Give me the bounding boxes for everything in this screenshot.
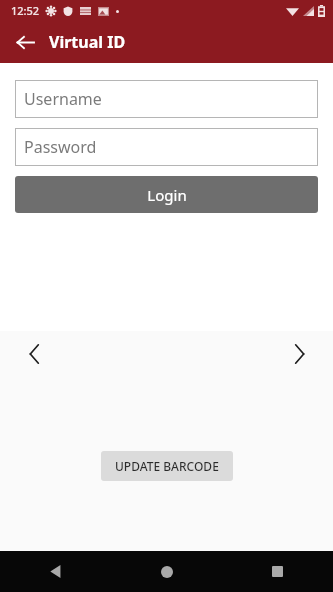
staticText: Login: [147, 185, 187, 205]
button[interactable]: Next: [283, 338, 315, 370]
staticText: Virtual ID: [49, 31, 126, 53]
button[interactable]: Back: [0, 551, 111, 592]
button[interactable]: Back: [9, 26, 41, 58]
button[interactable]: Previous: [18, 338, 50, 370]
staticText: Username: [24, 88, 102, 110]
button[interactable]: Recent apps: [222, 551, 333, 592]
button[interactable]: Username: [15, 80, 318, 118]
button[interactable]: Password: [15, 128, 318, 166]
staticText: 12:52: [11, 3, 40, 18]
button[interactable]: Home: [111, 551, 222, 592]
staticText: Password: [24, 136, 97, 158]
staticText: UPDATE BARCODE: [115, 458, 219, 474]
button[interactable]: UPDATE BARCODE: [101, 451, 233, 481]
button[interactable]: Login: [15, 176, 318, 213]
